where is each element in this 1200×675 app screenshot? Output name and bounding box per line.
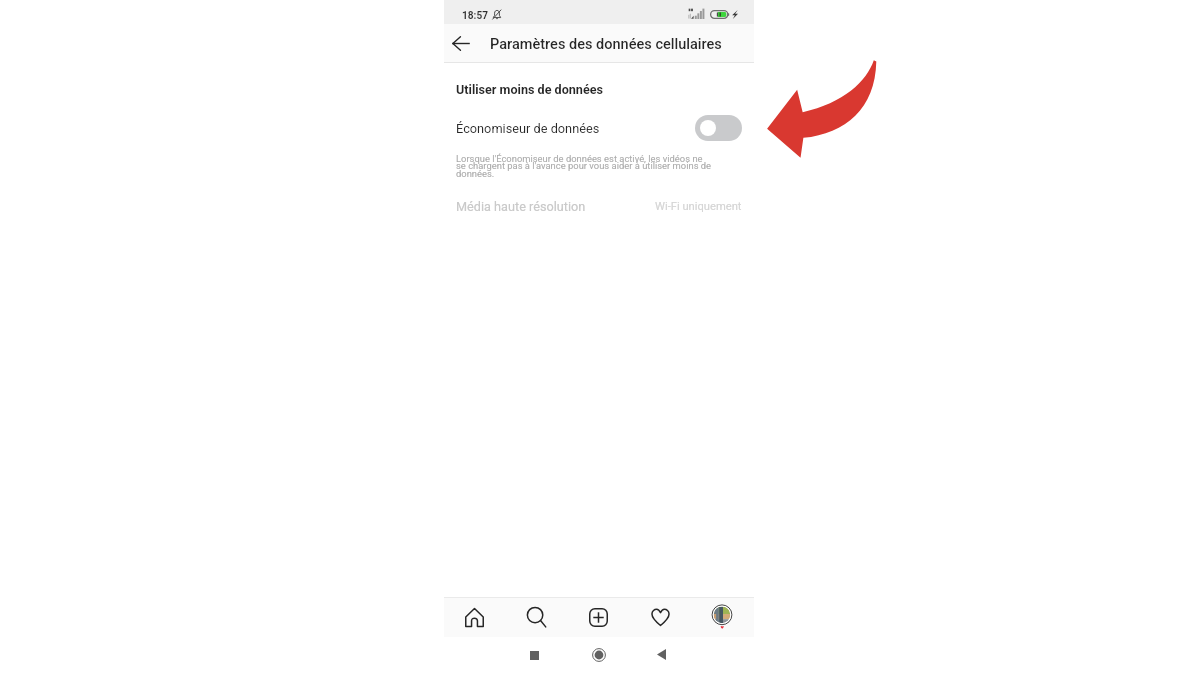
- button[interactable]: Back: [649, 642, 673, 666]
- staticText: Lorsque l'Économiseur de données est act…: [456, 153, 714, 179]
- button[interactable]: Profile: [691, 598, 753, 637]
- staticText: Économiseur de données: [456, 121, 600, 136]
- button[interactable]: Home: [587, 643, 611, 667]
- button[interactable]: Économiseur de données: [444, 114, 754, 146]
- staticText: Utiliser moins de données: [456, 82, 603, 97]
- staticText: Média haute résolution: [456, 199, 586, 214]
- staticText: Wi-Fi uniquement: [655, 200, 742, 213]
- button[interactable]: Média haute résolution: [444, 193, 754, 219]
- staticText: Paramètres des données cellulaires: [490, 36, 722, 53]
- button[interactable]: New post: [567, 598, 629, 637]
- staticText: 18:57: [462, 10, 489, 22]
- button[interactable]: Recents: [522, 643, 546, 667]
- button[interactable]: Home: [443, 598, 505, 637]
- button[interactable]: Search: [505, 598, 567, 637]
- button[interactable]: Back: [447, 28, 475, 58]
- button[interactable]: Économiseur de données: [695, 115, 742, 141]
- button[interactable]: Activity: [629, 598, 691, 637]
